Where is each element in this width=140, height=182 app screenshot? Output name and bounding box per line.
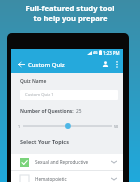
staticText: Full-featured study tool xyxy=(25,3,115,13)
button[interactable]: Custom Quiz 1 xyxy=(20,90,118,100)
staticText: Sexual and Reproductive xyxy=(35,159,89,165)
staticText: Custom Quiz xyxy=(28,61,65,69)
staticText: 25 xyxy=(76,108,82,115)
button[interactable]: Back xyxy=(15,56,28,73)
staticText: 1:23 PM xyxy=(103,50,120,56)
staticText: 50 xyxy=(114,124,119,129)
button[interactable]: Sexual and Reproductive xyxy=(11,154,123,170)
staticText: Hematopoietic xyxy=(35,176,67,182)
staticText: Quiz Name xyxy=(20,78,47,85)
button[interactable]: Hematopoietic xyxy=(11,171,123,182)
staticText: 1 xyxy=(18,124,21,129)
button[interactable]: More options xyxy=(112,56,122,73)
staticText: Number of Questions: xyxy=(20,108,74,115)
staticText: Select Your Topics xyxy=(20,138,69,145)
staticText: Custom Quiz 1 xyxy=(25,92,54,98)
staticText: to help you prepare xyxy=(33,13,108,23)
button[interactable]: Account xyxy=(99,56,112,73)
staticText: 4G xyxy=(93,50,98,55)
button[interactable] xyxy=(23,122,112,130)
